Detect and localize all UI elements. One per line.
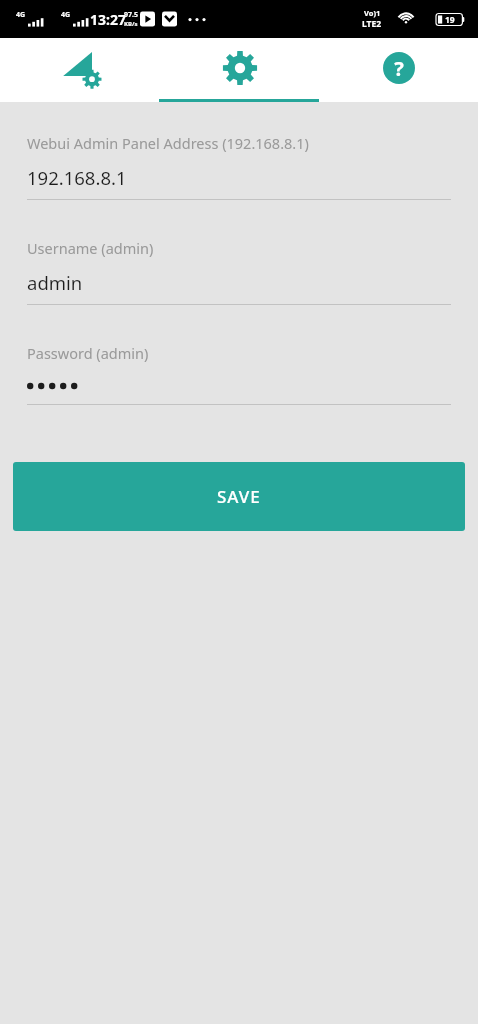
button[interactable]: Help bbox=[319, 38, 478, 102]
staticText: admin bbox=[27, 270, 83, 295]
button[interactable]: Connection settings bbox=[0, 38, 160, 102]
staticText: Username (admin) bbox=[27, 238, 154, 258]
staticText: 97.5 bbox=[124, 10, 138, 20]
staticText: LTE2 bbox=[362, 18, 382, 30]
button[interactable]: SAVE bbox=[13, 462, 465, 531]
staticText: Webui Admin Panel Address (192.168.8.1) bbox=[27, 133, 309, 153]
staticText: 19 bbox=[445, 14, 455, 26]
staticText: Password (admin) bbox=[27, 343, 149, 363]
button[interactable]: Password (admin) bbox=[0, 343, 478, 405]
staticText: SAVE bbox=[217, 485, 261, 508]
staticText: 4G bbox=[61, 10, 71, 20]
staticText: KB/s bbox=[124, 20, 138, 28]
staticText: ? bbox=[394, 55, 404, 82]
staticText: Vo)1 bbox=[364, 8, 381, 18]
button[interactable]: Settings bbox=[160, 38, 319, 102]
staticText: 13:27 bbox=[90, 10, 126, 29]
staticText: 192.168.8.1 bbox=[27, 165, 127, 190]
button[interactable]: Username (admin) bbox=[0, 238, 478, 305]
staticText: 4G bbox=[16, 10, 26, 20]
button[interactable]: Webui Admin Panel Address (192.168.8.1) bbox=[0, 133, 478, 200]
